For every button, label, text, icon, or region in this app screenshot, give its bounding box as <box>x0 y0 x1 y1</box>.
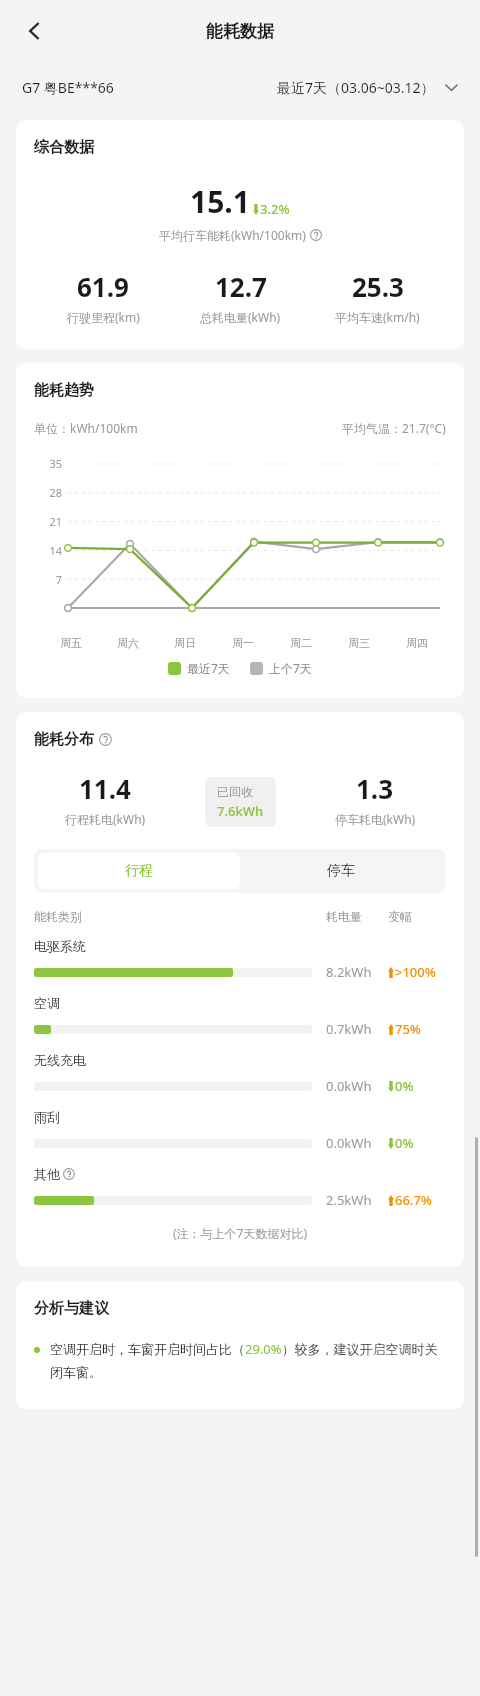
button[interactable]: 其他 <box>34 1152 446 1209</box>
staticText: 11.4 <box>79 771 131 806</box>
staticText: 66.7% <box>395 1191 432 1209</box>
staticText: 0.0kWh <box>326 1134 372 1152</box>
staticText: 能耗数据 <box>206 21 274 42</box>
staticText: 无线充电 <box>34 1052 86 1068</box>
staticText: 行程耗电(kWh) <box>65 811 146 827</box>
staticText: 7 <box>34 572 62 587</box>
staticText: 平均行车能耗(kWh/100km) <box>159 227 306 243</box>
staticText: 单位：kWh/100km <box>34 420 138 436</box>
staticText: 空调开启时，车窗开启时间占比（29.0%）较多，建议开启空调时关闭车窗。 <box>50 1340 446 1381</box>
button[interactable]: 行程 <box>38 853 240 889</box>
button[interactable]: 停车 <box>240 853 442 889</box>
staticText: 停车 <box>327 862 355 880</box>
staticText: 0% <box>395 1077 414 1095</box>
staticText: 2.5kWh <box>326 1191 372 1209</box>
staticText: 能耗分布 <box>34 730 94 749</box>
staticText: 1.3 <box>356 771 394 806</box>
staticText: 35 <box>34 456 62 471</box>
staticText: (注：与上个7天数据对比) <box>34 1225 446 1241</box>
button[interactable]: 电驱系统 <box>34 924 446 981</box>
staticText: 7.6kWh <box>217 802 264 820</box>
staticText: 0.0kWh <box>326 1077 372 1095</box>
button[interactable]: 雨刮 <box>34 1095 446 1152</box>
staticText: 平均气温：21.7(°C) <box>342 420 446 436</box>
staticText: 8.2kWh <box>326 963 372 981</box>
button[interactable]: Back <box>18 14 52 48</box>
staticText: 周三 <box>348 636 370 650</box>
staticText: 周二 <box>290 636 312 650</box>
staticText: 分析与建议 <box>34 1299 109 1318</box>
staticText: 综合数据 <box>34 138 94 157</box>
button[interactable]: 最近7天（03.06~03.12） <box>277 78 458 97</box>
button[interactable]: 空调 <box>34 981 446 1038</box>
staticText: G7 粤BE***66 <box>22 78 114 97</box>
staticText: 周五 <box>60 636 82 650</box>
staticText: 耗电量 <box>326 909 362 924</box>
staticText: 总耗电量(kWh) <box>200 309 281 325</box>
staticText: 其他 <box>34 1166 60 1182</box>
staticText: 能耗类别 <box>34 909 82 924</box>
staticText: 上个7天 <box>269 660 312 676</box>
staticText: 周四 <box>406 636 428 650</box>
staticText: 12.7 <box>215 269 267 304</box>
staticText: 雨刮 <box>34 1109 60 1125</box>
staticText: 3.2% <box>260 200 290 218</box>
staticText: 能耗趋势 <box>34 381 94 400</box>
staticText: 75% <box>395 1020 421 1038</box>
staticText: 已回收 <box>217 784 253 799</box>
staticText: 最近7天（03.06~03.12） <box>277 78 435 97</box>
staticText: 14 <box>34 543 62 558</box>
staticText: 最近7天 <box>187 660 230 676</box>
staticText: >100% <box>395 963 436 981</box>
staticText: 61.9 <box>77 269 129 304</box>
staticText: 28 <box>34 485 62 500</box>
staticText: 周日 <box>174 636 196 650</box>
staticText: 行程 <box>125 862 153 880</box>
staticText: 电驱系统 <box>34 938 86 954</box>
staticText: 0% <box>395 1134 414 1152</box>
staticText: 平均车速(km/h) <box>335 309 420 325</box>
staticText: 15.1 <box>190 181 250 222</box>
staticText: 周一 <box>232 636 254 650</box>
staticText: 0.7kWh <box>326 1020 372 1038</box>
staticText: 停车耗电(kWh) <box>335 811 416 827</box>
staticText: 25.3 <box>352 269 404 304</box>
staticText: 周六 <box>117 636 139 650</box>
staticText: 行驶里程(km) <box>67 309 140 325</box>
button[interactable]: 无线充电 <box>34 1038 446 1095</box>
staticText: 变幅 <box>388 909 412 924</box>
staticText: 空调 <box>34 995 60 1011</box>
staticText: 21 <box>34 514 62 529</box>
